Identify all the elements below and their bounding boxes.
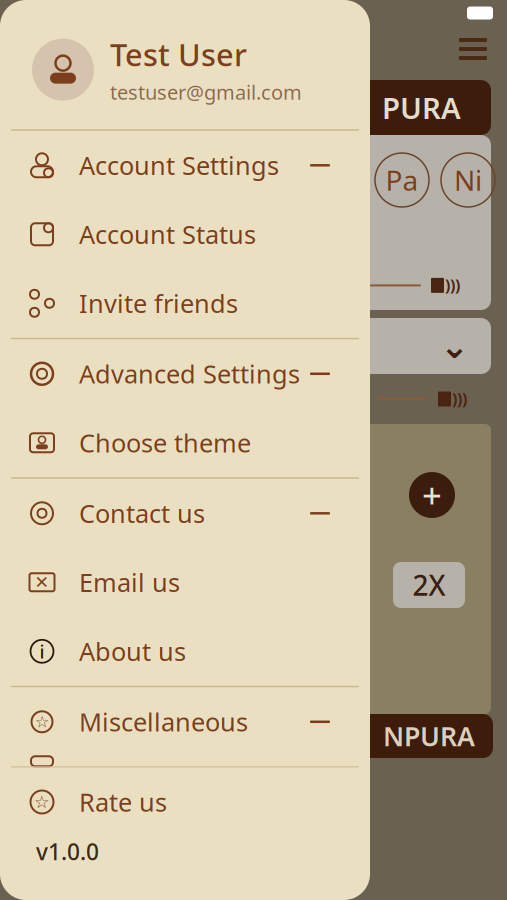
staticText: i xyxy=(39,639,44,664)
staticText: testuser@gmail.com xyxy=(110,79,302,105)
button[interactable]: ☆ xyxy=(0,687,370,756)
button[interactable]: Choose theme xyxy=(0,408,370,477)
staticText: ☆ xyxy=(35,713,49,731)
staticText: Ni xyxy=(454,161,482,199)
button[interactable]: Account Status xyxy=(0,200,370,269)
staticText: Contact us xyxy=(79,496,205,530)
staticText: ))) xyxy=(445,275,460,296)
staticText: v1.0.0 xyxy=(36,836,99,867)
button[interactable]: Invite friends xyxy=(0,269,370,338)
staticText: Pa xyxy=(385,161,418,199)
staticText: Choose theme xyxy=(79,426,251,460)
staticText: About us xyxy=(79,634,186,668)
staticText: Email us xyxy=(79,565,180,599)
staticText: NPURA xyxy=(383,718,475,754)
staticText: + xyxy=(422,472,442,518)
staticText: PURA xyxy=(382,88,461,127)
button[interactable]: Advanced Settings xyxy=(0,339,370,408)
staticText: ))) xyxy=(452,388,467,410)
staticText: Advanced Settings xyxy=(79,357,300,391)
staticText: Test User xyxy=(110,34,247,75)
staticText: 2X xyxy=(412,566,445,604)
staticText: ✕ xyxy=(34,572,49,592)
staticText: Account Settings xyxy=(79,148,279,182)
staticText: Account Status xyxy=(79,217,256,251)
button[interactable]: Account Settings xyxy=(0,131,370,200)
staticText: Invite friends xyxy=(79,286,238,320)
staticText: ☆ xyxy=(34,792,50,812)
staticText: Rate us xyxy=(79,785,167,819)
button[interactable]: ☆ xyxy=(0,767,370,836)
button[interactable]: Contact us xyxy=(0,479,370,548)
button[interactable]: ✕ xyxy=(0,548,370,617)
button[interactable]: Add xyxy=(409,472,455,518)
staticText: ⌄ xyxy=(440,326,469,366)
button[interactable]: Menu xyxy=(447,26,499,72)
staticText: Miscellaneous xyxy=(79,705,248,739)
button[interactable]: i xyxy=(0,617,370,686)
button[interactable]: 2X xyxy=(393,562,465,608)
